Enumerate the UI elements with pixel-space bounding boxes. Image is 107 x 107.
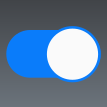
button[interactable]: Toggle, on — [0, 0, 107, 107]
